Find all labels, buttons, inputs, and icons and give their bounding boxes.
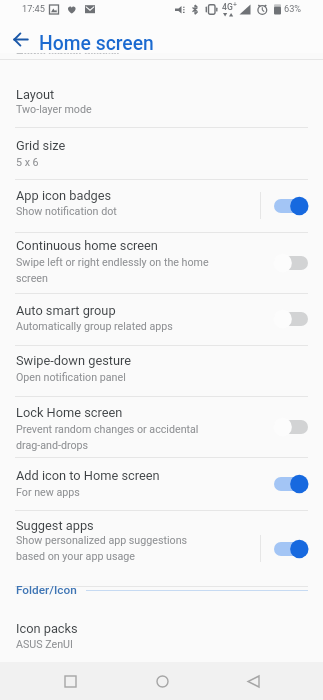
staticText: Prevent random changes or accidental dra… <box>16 423 206 451</box>
button[interactable]: Home <box>140 662 184 700</box>
button[interactable]: Switch off <box>273 252 309 274</box>
button[interactable]: Auto smart group <box>0 293 323 345</box>
button[interactable]: Switch off <box>273 308 309 330</box>
staticText: ASUS ZenUI <box>16 638 226 651</box>
staticText: App icon badges <box>16 188 112 203</box>
button[interactable]: App icon badges <box>0 179 323 232</box>
staticText: Icon packs <box>16 621 78 636</box>
staticText: Suggest apps <box>16 518 94 533</box>
button[interactable]: Switch on <box>273 473 309 495</box>
staticText: Layout <box>16 87 55 102</box>
button[interactable]: Layout <box>0 59 323 127</box>
staticText: Automatically group related apps <box>16 320 231 333</box>
button[interactable]: Recents <box>48 662 92 700</box>
button[interactable]: Switch off <box>273 416 309 438</box>
staticText: Add icon to Home screen <box>16 468 160 483</box>
staticText: Two-layer mode <box>16 103 226 116</box>
button[interactable]: Switch on <box>273 538 309 560</box>
button[interactable]: Switch on <box>273 195 309 217</box>
staticText: Home screen <box>39 32 154 55</box>
staticText: For new apps <box>16 486 226 499</box>
staticText: Continuous home screen <box>16 238 158 253</box>
staticText: Swipe-down gesture <box>16 353 132 368</box>
staticText: Swipe left or right endlessly on the hom… <box>16 256 214 284</box>
staticText: 63% <box>284 3 302 14</box>
staticText: 5 x 6 <box>16 156 226 169</box>
button[interactable]: Suggest apps <box>0 510 323 586</box>
staticText: Auto smart group <box>16 303 116 318</box>
staticText: Folder/Icon <box>16 583 77 597</box>
staticText: Home screen display <box>16 53 120 54</box>
staticText: Grid size <box>16 138 66 153</box>
staticText: 17:45 <box>22 3 45 14</box>
button[interactable]: Lock Home screen <box>0 396 323 457</box>
staticText: + <box>233 1 237 9</box>
button[interactable]: Add icon to Home screen <box>0 457 323 510</box>
staticText: Lock Home screen <box>16 405 123 420</box>
button[interactable]: Navigate up <box>8 26 34 52</box>
button[interactable]: Continuous home screen <box>0 232 323 294</box>
staticText: Open notification panel <box>16 371 226 384</box>
staticText: 4G <box>222 2 233 12</box>
button[interactable]: Icon packs <box>0 590 323 662</box>
staticText: Show personalized app suggestions based … <box>16 534 196 562</box>
staticText: Show notification dot <box>16 205 226 218</box>
button[interactable]: Grid size <box>0 127 323 179</box>
button[interactable]: Swipe-down gesture <box>0 345 323 397</box>
button[interactable]: Back <box>231 662 275 700</box>
